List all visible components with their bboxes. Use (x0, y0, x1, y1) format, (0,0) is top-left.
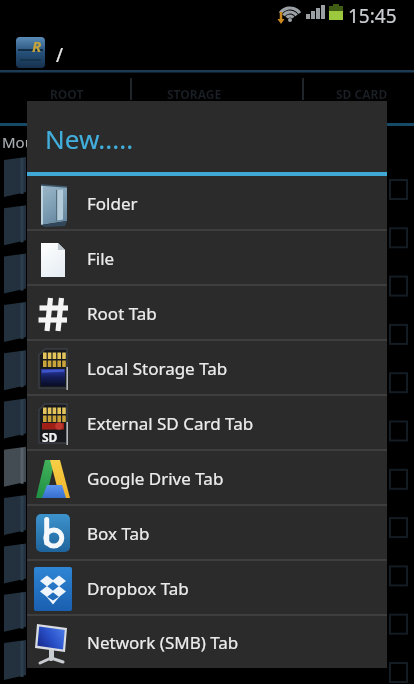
staticText: / (56, 42, 64, 68)
staticText: 15:45 (348, 3, 397, 29)
button[interactable]: SD (27, 396, 387, 451)
staticText: Box Tab (87, 522, 150, 545)
staticText: Mou (2, 132, 34, 152)
staticText: SD CARD (336, 86, 388, 102)
staticText: Folder (87, 192, 138, 215)
staticText: Network (SMB) Tab (87, 631, 239, 654)
button[interactable]: Folder (27, 176, 387, 231)
staticText: ROOT (50, 86, 84, 102)
staticText: R (32, 36, 42, 56)
button[interactable]: Dropbox Tab (27, 561, 387, 616)
button[interactable]: Network (SMB) Tab (27, 616, 387, 668)
staticText: File (87, 247, 115, 270)
staticText: SD (42, 429, 58, 445)
button[interactable]: Box Tab (27, 506, 387, 561)
button[interactable]: File (27, 231, 387, 286)
button[interactable]: Root Tab (27, 286, 387, 341)
staticText: Dropbox Tab (87, 577, 189, 600)
staticText: Local Storage Tab (87, 357, 228, 380)
staticText: STORAGE (167, 86, 222, 102)
button[interactable]: Google Drive Tab (27, 451, 387, 506)
staticText: Google Drive Tab (87, 467, 224, 490)
staticText: External SD Card Tab (87, 412, 254, 435)
staticText: New..... (45, 121, 134, 156)
staticText: Root Tab (87, 302, 157, 325)
button[interactable]: Local Storage Tab (27, 341, 387, 396)
